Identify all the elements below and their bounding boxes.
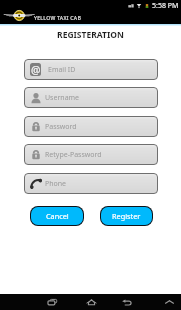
button[interactable]: Home — [78, 294, 104, 310]
staticText: 5:58 PM — [152, 1, 179, 11]
staticText: YELLOW TAXI CAB — [34, 14, 82, 21]
button[interactable]: Register — [101, 207, 152, 225]
button[interactable]: Recent apps — [39, 294, 65, 310]
button[interactable]: Cancel — [31, 207, 83, 225]
staticText: Password — [45, 122, 77, 132]
button[interactable]: Password — [24, 116, 158, 137]
staticText: Cancel — [46, 211, 69, 221]
staticText: Email ID — [48, 65, 76, 75]
button[interactable]: Show navigation — [156, 294, 181, 310]
button[interactable]: Retype-Password — [24, 144, 158, 165]
staticText: Retype-Password — [45, 150, 102, 160]
staticText: @ — [31, 63, 41, 76]
button[interactable]: Back — [113, 294, 139, 310]
staticText: Username — [45, 93, 80, 103]
button[interactable]: @ — [24, 59, 158, 80]
button[interactable]: Username — [24, 87, 158, 108]
staticText: Register — [112, 211, 141, 221]
button[interactable]: Phone — [24, 173, 158, 194]
staticText: REGISTERATION — [0, 29, 181, 41]
staticText: Phone — [45, 179, 67, 189]
